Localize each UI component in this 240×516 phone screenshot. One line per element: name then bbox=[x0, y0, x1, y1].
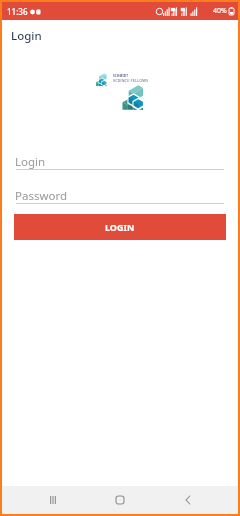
button[interactable]: Recent apps bbox=[36, 486, 70, 514]
staticText: Login bbox=[15, 154, 46, 170]
staticText: LOGIN bbox=[105, 221, 135, 233]
staticText: 40% bbox=[213, 6, 227, 16]
button[interactable]: LOGIN bbox=[14, 214, 226, 240]
staticText: 11:36 bbox=[7, 6, 28, 17]
staticText: SCIENCE FELLOWS bbox=[113, 78, 149, 83]
staticText: SCHMIDT bbox=[113, 74, 129, 78]
button[interactable]: Back bbox=[171, 486, 205, 514]
staticText: Login bbox=[11, 28, 42, 44]
staticText: Password bbox=[15, 188, 68, 204]
button[interactable]: Home bbox=[103, 486, 137, 514]
